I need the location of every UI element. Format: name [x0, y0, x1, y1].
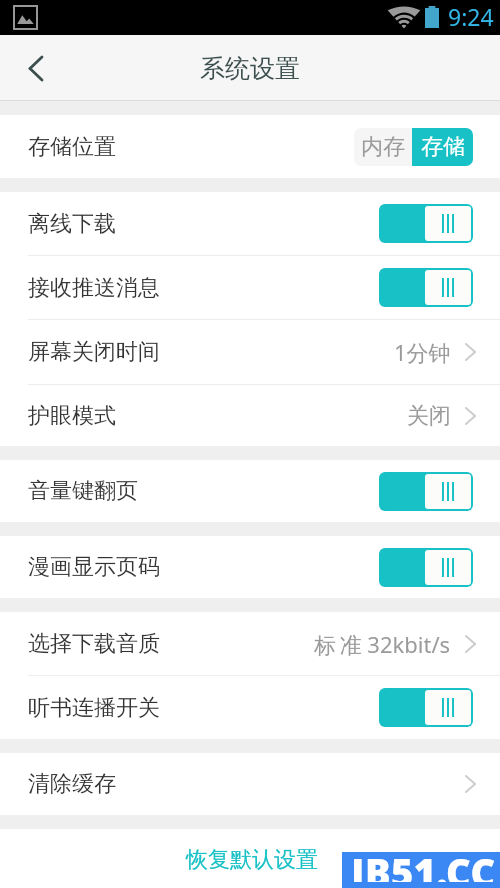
staticText: 9:24 — [448, 1, 494, 32]
button[interactable]: Back — [0, 35, 70, 101]
button[interactable]: Toggle — [379, 688, 473, 727]
staticText: 标 准 32kbit/s — [314, 629, 451, 659]
staticText: 离线下载 — [28, 210, 116, 238]
staticText: 听书连播开关 — [28, 694, 160, 722]
staticText: 屏幕关闭时间 — [28, 338, 160, 366]
staticText: 护眼模式 — [28, 402, 116, 430]
button[interactable]: Toggle — [379, 472, 473, 511]
button[interactable]: 恢复默认设置 — [176, 836, 328, 884]
button[interactable]: 选择下载音质 — [0, 612, 500, 675]
staticText: 接收推送消息 — [28, 274, 160, 302]
staticText: JB51.CC — [351, 846, 496, 882]
button[interactable]: Toggle — [379, 204, 473, 243]
button[interactable]: 漫画显示页码 — [0, 536, 500, 598]
button[interactable]: 屏幕关闭时间 — [0, 320, 500, 384]
staticText: 内存 — [361, 133, 405, 161]
button[interactable]: 接收推送消息 — [0, 256, 500, 319]
staticText: 系统设置 — [200, 53, 300, 84]
button[interactable]: 音量键翻页 — [0, 460, 500, 522]
staticText: 清除缓存 — [28, 770, 116, 798]
staticText: 关闭 — [407, 402, 451, 430]
button[interactable]: Toggle — [379, 548, 473, 587]
button[interactable]: 内存 — [354, 128, 412, 166]
staticText: 1分钟 — [394, 337, 451, 367]
button[interactable]: 清除缓存 — [0, 753, 500, 815]
staticText: 存储位置 — [28, 133, 116, 161]
button[interactable]: 存储 — [412, 128, 473, 166]
button[interactable]: 存储位置 — [0, 115, 500, 178]
staticText: 存储 — [421, 133, 465, 161]
button[interactable]: 护眼模式 — [0, 385, 500, 446]
staticText: 漫画显示页码 — [28, 553, 160, 581]
staticText: 恢复默认设置 — [186, 846, 318, 874]
staticText: 音量键翻页 — [28, 477, 138, 505]
staticText: 选择下载音质 — [28, 630, 160, 658]
button[interactable]: 离线下载 — [0, 192, 500, 255]
button[interactable]: 听书连播开关 — [0, 676, 500, 739]
button[interactable]: Toggle — [379, 268, 473, 307]
